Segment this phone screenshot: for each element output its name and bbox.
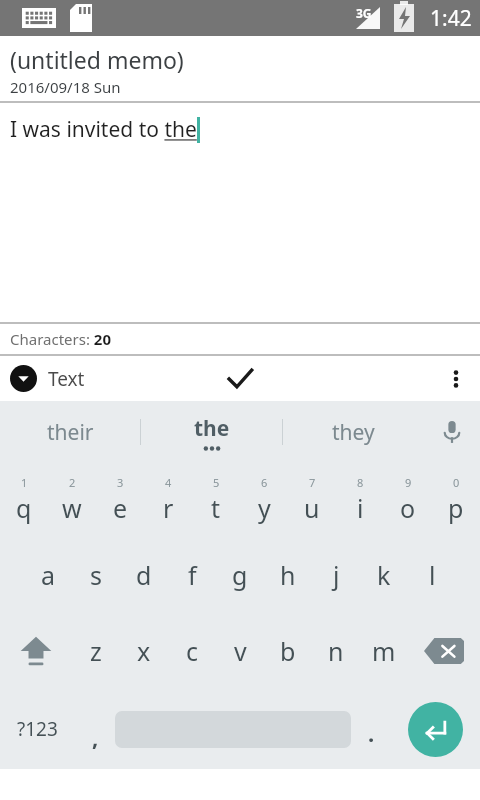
staticText: d	[136, 558, 152, 592]
staticText: 1	[21, 475, 28, 490]
staticText: their	[47, 418, 94, 447]
staticText: I was invited to the	[10, 115, 197, 144]
button[interactable]: More options	[432, 356, 480, 401]
button[interactable]: ?123	[0, 689, 75, 769]
staticText: 8	[357, 475, 364, 490]
staticText: k	[377, 558, 391, 592]
staticText: p	[448, 491, 464, 525]
button[interactable]: Shift	[0, 613, 72, 689]
staticText: 9	[405, 475, 412, 490]
staticText: s	[90, 558, 102, 592]
staticText: v	[234, 634, 247, 668]
staticText: l	[429, 558, 436, 592]
button[interactable]: Text	[0, 359, 97, 398]
button[interactable]: b	[264, 613, 312, 689]
staticText: 5	[213, 475, 220, 490]
staticText: (untitled memo)	[10, 44, 184, 75]
button[interactable]: Space	[115, 689, 351, 769]
staticText: r	[163, 491, 174, 525]
button[interactable]: d	[120, 537, 168, 613]
button[interactable]: 0	[432, 463, 480, 537]
button[interactable]: 8	[336, 463, 384, 537]
staticText: z	[90, 634, 102, 668]
button[interactable]: g	[216, 537, 264, 613]
staticText: 0	[453, 475, 460, 490]
staticText: u	[304, 491, 320, 525]
button[interactable]: h	[264, 537, 312, 613]
button[interactable]: the	[141, 401, 282, 463]
button[interactable]: a	[24, 537, 72, 613]
staticText: ,	[92, 722, 99, 752]
staticText: 1:42	[430, 4, 472, 33]
button[interactable]: m	[360, 613, 408, 689]
button[interactable]: 6	[240, 463, 288, 537]
button[interactable]: 7	[288, 463, 336, 537]
button[interactable]: c	[168, 613, 216, 689]
staticText: y	[258, 491, 271, 525]
staticText: h	[280, 558, 296, 592]
staticText: ?123	[17, 716, 58, 742]
button[interactable]: (untitled memo)	[0, 36, 480, 101]
button[interactable]: Backspace	[408, 613, 480, 689]
button[interactable]: Confirm	[216, 356, 264, 401]
button[interactable]: 5	[192, 463, 240, 537]
button[interactable]: 1	[0, 463, 48, 537]
staticText: 2	[69, 475, 76, 490]
staticText: x	[137, 634, 151, 668]
staticText: e	[113, 491, 128, 525]
button[interactable]: Voice input	[424, 401, 480, 463]
button[interactable]: 4	[144, 463, 192, 537]
button[interactable]: 3	[96, 463, 144, 537]
button[interactable]: ,	[75, 689, 115, 769]
staticText: i	[357, 491, 364, 525]
staticText: a	[41, 558, 56, 592]
button[interactable]: x	[120, 613, 168, 689]
staticText: 2016/09/18 Sun	[10, 77, 121, 97]
staticText: 3G	[356, 5, 372, 21]
button[interactable]: v	[216, 613, 264, 689]
staticText: n	[328, 634, 344, 668]
button[interactable]: 9	[384, 463, 432, 537]
staticText: j	[333, 558, 340, 592]
staticText: Text	[48, 366, 85, 392]
staticText: Characters: 20	[10, 329, 112, 349]
button[interactable]: l	[408, 537, 456, 613]
staticText: the	[194, 414, 230, 443]
staticText: t	[211, 491, 221, 525]
staticText: f	[188, 558, 197, 592]
button[interactable]: k	[360, 537, 408, 613]
staticText: o	[400, 491, 416, 525]
staticText: q	[16, 491, 32, 525]
button[interactable]: I was invited to the	[0, 103, 480, 322]
button[interactable]: their	[0, 401, 140, 463]
button[interactable]: n	[312, 613, 360, 689]
staticText: g	[232, 558, 248, 592]
staticText: 7	[309, 475, 316, 490]
button[interactable]: f	[168, 537, 216, 613]
button[interactable]: they	[283, 401, 424, 463]
staticText: c	[186, 634, 199, 668]
staticText: w	[62, 491, 82, 525]
staticText: .	[368, 718, 375, 748]
button[interactable]: j	[312, 537, 360, 613]
button[interactable]: Enter	[391, 689, 480, 769]
staticText: b	[280, 634, 296, 668]
button[interactable]: z	[72, 613, 120, 689]
button[interactable]: .	[351, 689, 391, 769]
staticText: 3	[117, 475, 124, 490]
button[interactable]: s	[72, 537, 120, 613]
staticText: 4	[165, 475, 172, 490]
button[interactable]: 2	[48, 463, 96, 537]
staticText: they	[332, 418, 375, 447]
button[interactable]: Characters: 20	[0, 324, 480, 354]
staticText: m	[372, 634, 396, 668]
staticText: 6	[261, 475, 268, 490]
